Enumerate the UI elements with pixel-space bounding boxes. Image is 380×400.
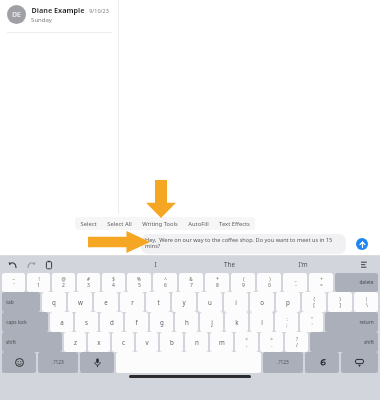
button[interactable]: e (94, 292, 118, 312)
button[interactable]: h (175, 312, 198, 332)
button[interactable]: delete (335, 273, 378, 292)
button[interactable]: j (200, 312, 223, 332)
button[interactable]: DE (0, 0, 118, 32)
button[interactable]: + (309, 273, 333, 292)
staticText: c (122, 338, 125, 346)
button[interactable]: % (127, 273, 151, 292)
staticText: ) (269, 276, 271, 282)
button[interactable]: o (250, 292, 274, 312)
button[interactable]: | (354, 292, 378, 312)
button[interactable]: } (328, 292, 352, 312)
button[interactable]: Select All (102, 217, 137, 230)
button[interactable]: Text Effects (214, 217, 255, 230)
staticText: 0 (268, 282, 271, 289)
button[interactable]: I (118, 256, 192, 273)
staticText: j (211, 318, 213, 326)
button[interactable]: Hide keyboard (341, 352, 378, 373)
button[interactable]: r (120, 292, 144, 312)
staticText: - (295, 282, 297, 289)
button[interactable]: > (260, 332, 283, 352)
staticText: ] (339, 302, 341, 309)
button[interactable]: : (275, 312, 298, 332)
button[interactable]: q (42, 292, 66, 312)
button[interactable]: z (64, 332, 86, 352)
button[interactable]: ? (285, 332, 308, 352)
staticText: n (195, 338, 199, 346)
button[interactable]: The (192, 256, 266, 273)
button[interactable]: Undo (6, 258, 19, 271)
staticText: d (110, 318, 114, 326)
button[interactable]: I'm (266, 256, 340, 273)
button[interactable]: n (185, 332, 208, 352)
staticText: 1 (37, 282, 40, 289)
button[interactable]: shift (310, 332, 378, 352)
staticText: 6 (164, 282, 167, 289)
button[interactable]: _ (283, 273, 307, 292)
button[interactable]: s (75, 312, 98, 332)
button[interactable]: b (160, 332, 183, 352)
button[interactable]: Select (75, 217, 102, 230)
button[interactable]: y (172, 292, 196, 312)
button[interactable]: c (112, 332, 134, 352)
staticText: return (359, 319, 374, 326)
button[interactable]: * (205, 273, 229, 292)
staticText: g (160, 318, 164, 326)
button[interactable]: t (146, 292, 170, 312)
staticText: Select (80, 220, 97, 228)
button[interactable]: Writing Tools (137, 217, 183, 230)
button[interactable]: Redo (24, 258, 37, 271)
button[interactable]: $ (102, 273, 125, 292)
staticText: I (154, 260, 157, 269)
button[interactable]: Markup (305, 352, 339, 373)
staticText: q (52, 298, 56, 306)
button[interactable]: g (150, 312, 173, 332)
button[interactable]: u (198, 292, 222, 312)
button[interactable]: ^ (153, 273, 177, 292)
button[interactable]: < (235, 332, 258, 352)
button[interactable]: p (276, 292, 300, 312)
staticText: ^ (164, 276, 167, 282)
button[interactable]: .?123 (263, 352, 303, 373)
button[interactable]: caps lock (2, 312, 48, 332)
button[interactable]: shift (2, 332, 62, 352)
button[interactable]: v (136, 332, 158, 352)
button[interactable]: ( (231, 273, 255, 292)
button[interactable]: @ (52, 273, 75, 292)
button[interactable]: " (300, 312, 323, 332)
button[interactable]: ) (257, 273, 281, 292)
button[interactable]: AutoFill (183, 217, 214, 230)
button[interactable]: a (50, 312, 73, 332)
button[interactable]: Dictation (80, 352, 114, 373)
staticText: shift (6, 339, 16, 346)
staticText: 7 (190, 282, 193, 289)
button[interactable]: l (250, 312, 273, 332)
button[interactable]: # (77, 273, 100, 292)
button[interactable]: x (88, 332, 110, 352)
button[interactable]: Emoji (2, 352, 36, 373)
staticText: o (260, 298, 264, 306)
button[interactable]: m (210, 332, 233, 352)
button[interactable]: .?123 (38, 352, 78, 373)
button[interactable]: d (100, 312, 123, 332)
button[interactable]: w (68, 292, 92, 312)
button[interactable]: k (225, 312, 248, 332)
button[interactable]: ! (27, 273, 50, 292)
staticText: delete (359, 279, 374, 286)
staticText: h (185, 318, 189, 326)
button[interactable]: Hey, Were on our way to the coffee shop.… (141, 234, 346, 254)
button[interactable]: Text formatting (359, 258, 372, 271)
button[interactable]: { (302, 292, 326, 312)
button[interactable]: f (125, 312, 148, 332)
staticText: = (320, 282, 323, 289)
button[interactable]: ~ (2, 273, 25, 292)
staticText: k (235, 318, 239, 326)
button[interactable]: tab (2, 292, 40, 312)
button[interactable]: & (179, 273, 203, 292)
staticText: r (131, 298, 134, 306)
button[interactable]: Send (356, 238, 368, 250)
button[interactable]: i (224, 292, 248, 312)
staticText: m (219, 338, 225, 346)
button[interactable]: Paste (42, 258, 55, 271)
button[interactable]: return (325, 312, 378, 332)
